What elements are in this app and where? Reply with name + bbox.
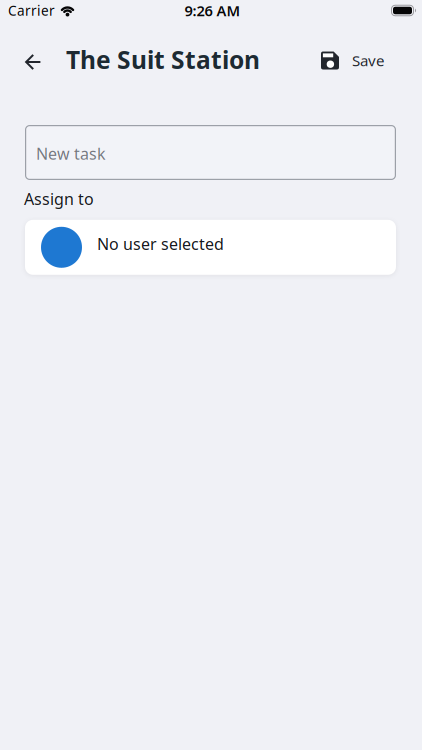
button[interactable]: Save	[323, 50, 384, 71]
button[interactable]: No user selected	[25, 220, 396, 275]
staticText: Assign to	[24, 188, 94, 210]
staticText: Carrier	[8, 1, 55, 20]
staticText: Save	[352, 50, 384, 71]
button[interactable]: Back	[25, 51, 41, 67]
button[interactable]: New task	[25, 125, 396, 180]
staticText: New task	[36, 143, 106, 164]
staticText: The Suit Station	[66, 43, 260, 76]
staticText: 9:26 AM	[184, 0, 240, 20]
staticText: No user selected	[97, 233, 224, 255]
